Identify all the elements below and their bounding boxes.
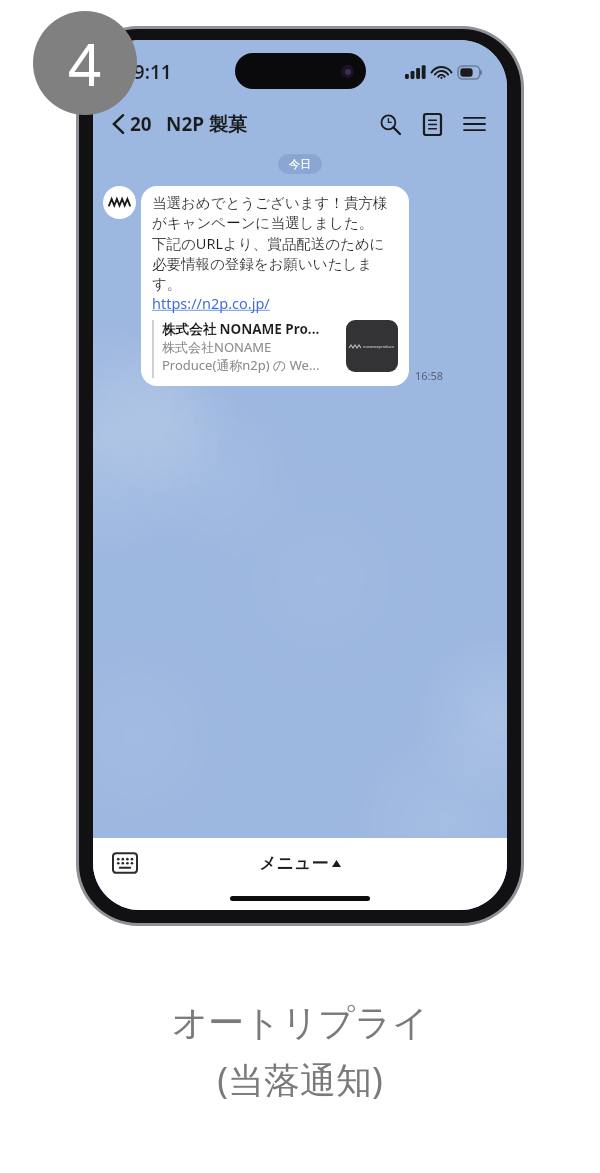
button[interactable]: Search xyxy=(373,107,407,141)
button[interactable]: Notes xyxy=(415,107,449,141)
staticText: オートリプライ xyxy=(171,1000,429,1045)
staticText: 株式会社 NONAME Pro... xyxy=(162,320,320,338)
staticText: 当選おめでとうございます！貴方様がキャンペーンに当選しました。 下記のURLより… xyxy=(152,194,398,293)
staticText: メニュー xyxy=(259,853,329,874)
staticText: 株式会社NONAME Produce(通称n2p) の We... xyxy=(162,338,320,374)
button[interactable]: 株式会社 NONAME Pro... xyxy=(152,320,398,378)
staticText: N2P 製菓 xyxy=(166,111,248,137)
button[interactable]: メニュー xyxy=(249,850,351,877)
button[interactable]: Keyboard xyxy=(109,847,141,879)
staticText: (当落通知) xyxy=(217,1055,383,1104)
button[interactable]: https://n2p.co.jp/ xyxy=(152,293,270,313)
button[interactable]: Menu xyxy=(457,107,491,141)
staticText: nonameproduce xyxy=(363,344,395,349)
staticText: 19:11 xyxy=(123,59,172,85)
staticText: 20 xyxy=(130,111,152,137)
button[interactable]: 20 xyxy=(109,107,156,141)
button[interactable]: 当選おめでとうございます！貴方様がキャンペーンに当選しました。 下記のURLより… xyxy=(141,186,409,386)
staticText: 4 xyxy=(68,24,102,103)
staticText: 16:58 xyxy=(415,368,444,383)
button[interactable]: Profile xyxy=(103,186,136,219)
staticText: 今日 xyxy=(289,157,311,171)
